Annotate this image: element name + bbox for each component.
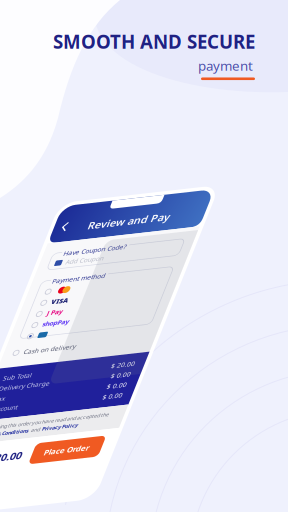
staticText: By placing this order you have read and … [14, 241, 140, 248]
staticText: Cash on delivery [25, 159, 77, 168]
staticText: payment [198, 57, 253, 74]
staticText: Review and Pay [39, 22, 121, 36]
staticText: and [65, 249, 74, 256]
staticText: Privacy Policy [76, 249, 112, 256]
staticText: Terms & Conditions [14, 249, 63, 256]
staticText: $ 0.00 [126, 209, 146, 218]
staticText: Have Coupon Code? [25, 53, 88, 62]
staticText: SMOOTH AND SECURE [53, 29, 255, 54]
staticText: $ 0.00 [126, 220, 146, 229]
staticText: $ 20.00 [122, 186, 146, 195]
staticText: shopPay [33, 130, 60, 139]
staticText: Place Order [88, 274, 134, 285]
staticText: $ 0.00 [126, 197, 146, 206]
staticText: Payment method [25, 83, 78, 92]
staticText: USD 20.00 [14, 272, 66, 286]
